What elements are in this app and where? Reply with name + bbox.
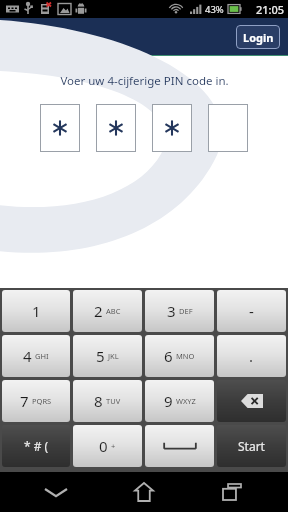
staticText: + — [111, 441, 116, 451]
button[interactable]: 6 — [145, 335, 214, 377]
staticText: TUV — [106, 396, 121, 406]
staticText: 4 — [23, 346, 32, 366]
button[interactable]: Recent apps — [200, 472, 264, 512]
staticText: MNO — [176, 351, 195, 361]
staticText: PQRS — [32, 396, 52, 406]
staticText: 8 — [94, 391, 103, 411]
staticText: 21:05 — [256, 2, 285, 17]
staticText: 6 — [164, 346, 173, 366]
staticText: Voer uw 4-cijferige PIN code in. — [60, 73, 229, 89]
staticText: Login — [243, 30, 274, 45]
button[interactable]: Login — [236, 25, 280, 49]
button[interactable]: 0 — [73, 425, 142, 467]
staticText: WXYZ — [176, 396, 196, 406]
button[interactable]: - — [217, 290, 286, 332]
staticText: 5 — [96, 346, 105, 366]
staticText: 0 — [99, 436, 108, 456]
button[interactable]: 8 — [73, 380, 142, 422]
staticText: 3 — [167, 301, 176, 321]
staticText: 9 — [164, 391, 173, 411]
button[interactable]: Backspace — [217, 380, 286, 422]
button[interactable]: 4 — [2, 335, 70, 377]
staticText: ABC — [106, 306, 121, 316]
staticText: DEF — [179, 306, 193, 316]
button[interactable] — [152, 104, 192, 152]
staticText: - — [249, 301, 254, 321]
button[interactable]: 2 — [73, 290, 142, 332]
staticText: . — [249, 346, 254, 366]
button[interactable]: 9 — [145, 380, 214, 422]
staticText: 43% — [205, 3, 224, 16]
staticText: 2 — [94, 301, 103, 321]
button[interactable]: . — [217, 335, 286, 377]
button[interactable]: Start — [217, 425, 286, 467]
staticText: JKL — [108, 351, 119, 361]
button[interactable] — [96, 104, 136, 152]
staticText: GHI — [35, 351, 49, 361]
button[interactable]: 3 — [145, 290, 214, 332]
button[interactable]: Back — [24, 472, 88, 512]
button[interactable] — [208, 104, 248, 152]
button[interactable] — [40, 104, 80, 152]
button[interactable]: Home — [112, 472, 176, 512]
button[interactable]: Space — [145, 425, 214, 467]
staticText: 7 — [20, 391, 29, 411]
button[interactable]: * # ( — [2, 425, 70, 467]
button[interactable]: 5 — [73, 335, 142, 377]
button[interactable]: 1 — [2, 290, 70, 332]
staticText: * # ( — [24, 438, 49, 454]
staticText: 1 — [32, 301, 41, 321]
staticText: Start — [238, 438, 265, 454]
button[interactable]: 7 — [2, 380, 70, 422]
